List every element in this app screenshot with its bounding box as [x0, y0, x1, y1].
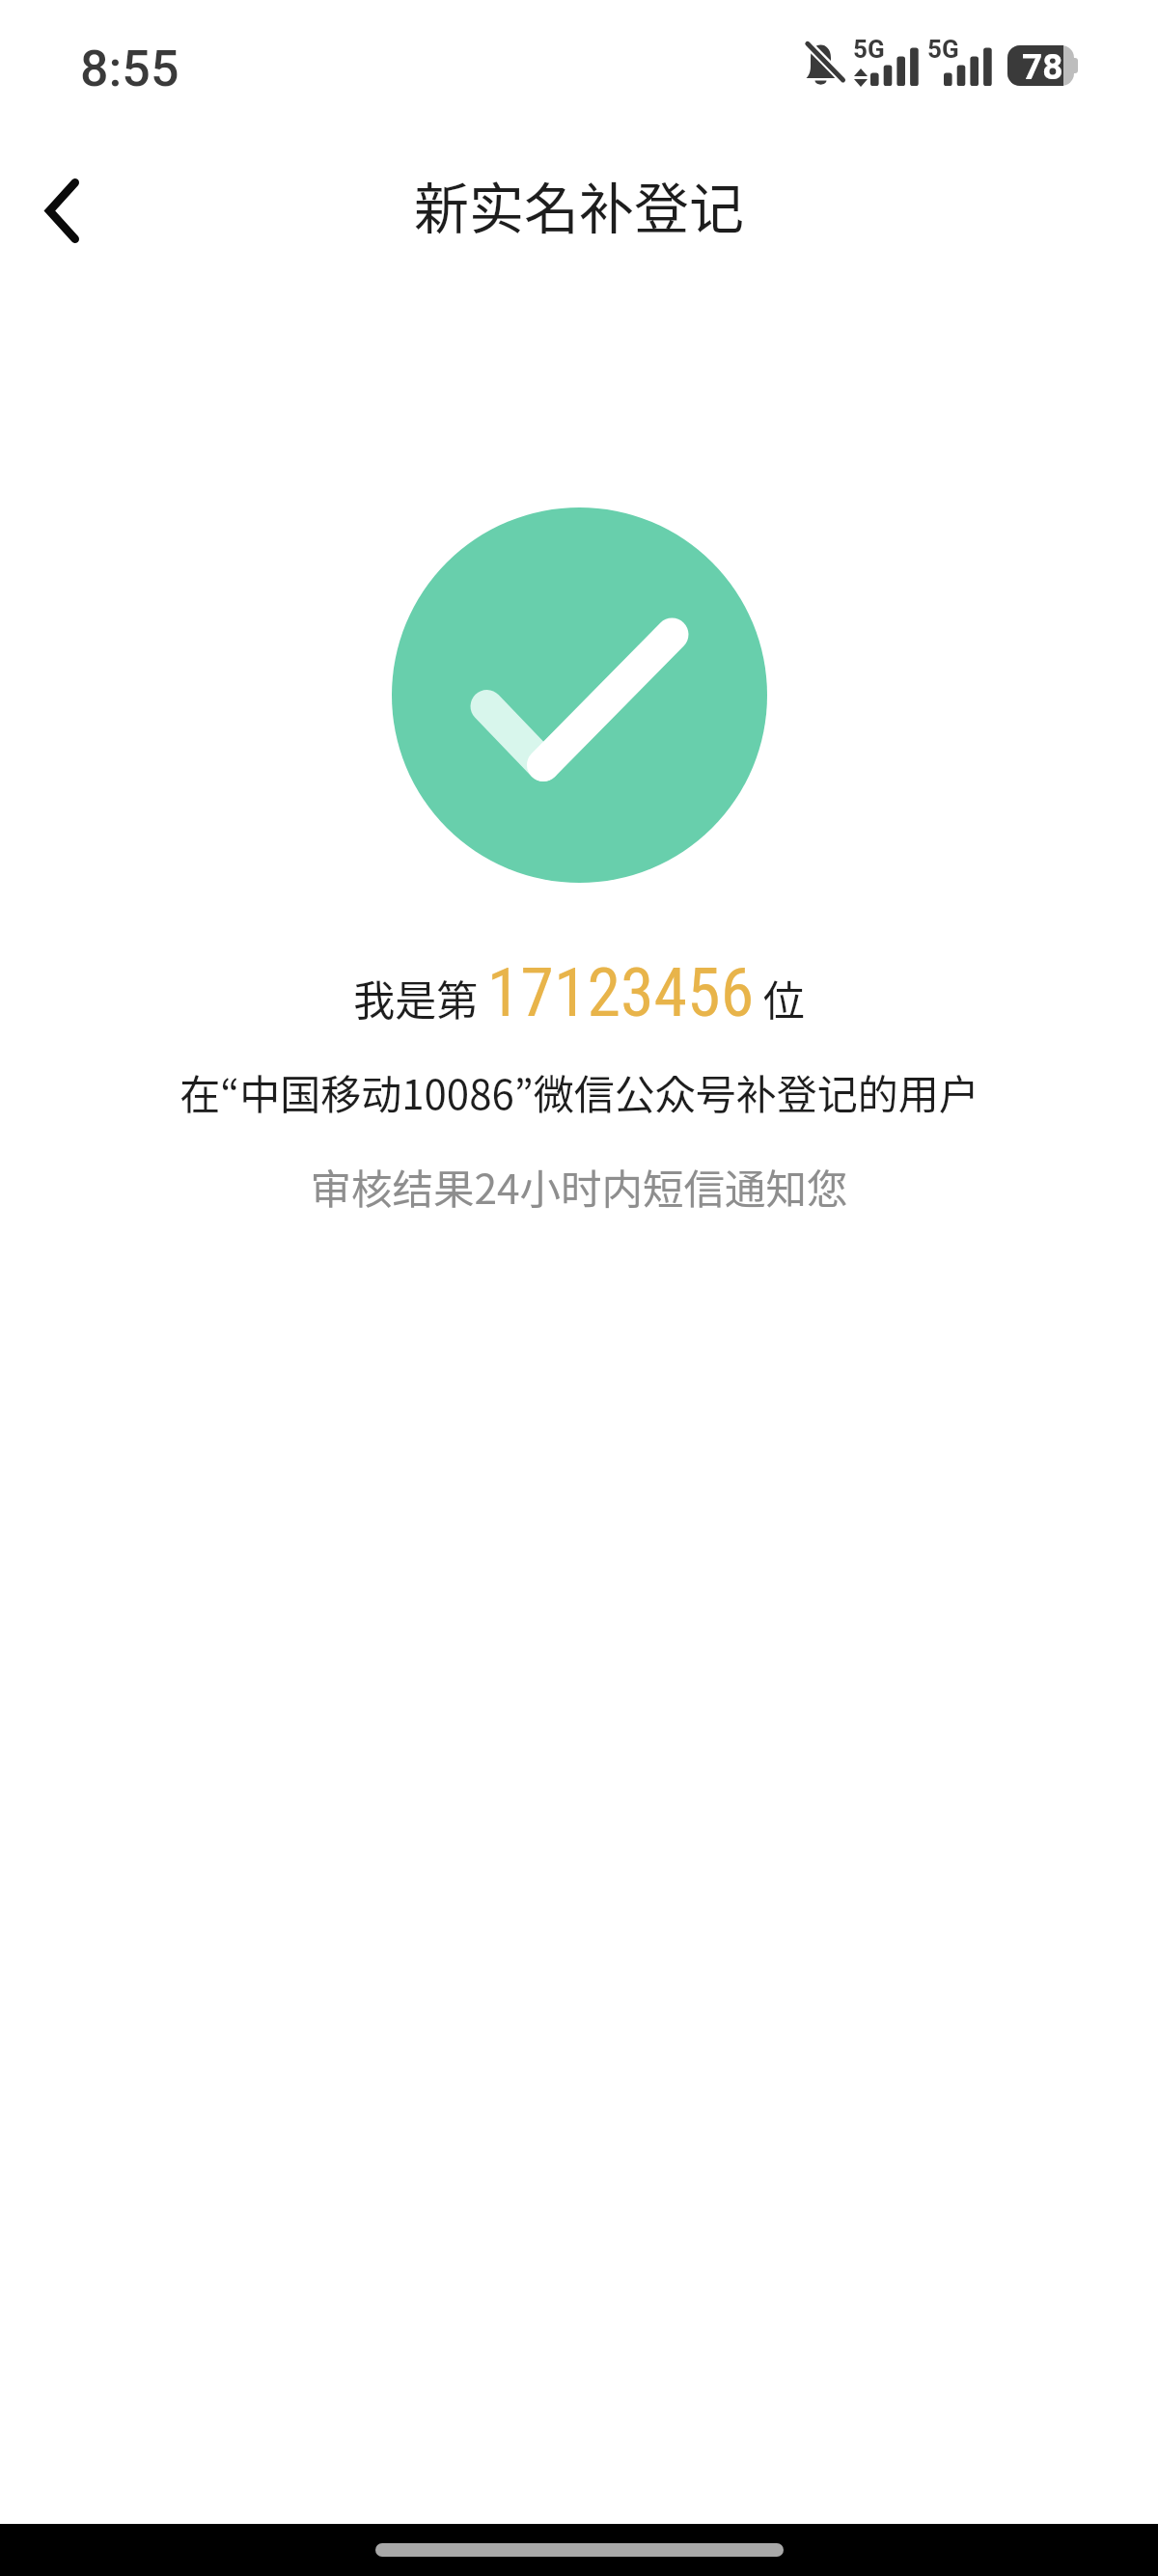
button[interactable]: Back — [9, 157, 115, 263]
staticText: 新实名补登记 — [414, 165, 744, 245]
staticText: 8:55 — [80, 40, 179, 98]
staticText: 5G — [853, 35, 885, 64]
staticText: 在“中国移动10086”微信公众号补登记的用户 — [179, 1062, 979, 1121]
staticText: 78 — [1022, 46, 1063, 87]
staticText: 审核结果24小时内短信通知您 — [310, 1157, 848, 1217]
staticText: 我是第 17123456 位 — [353, 953, 805, 1032]
staticText: 5G — [927, 35, 959, 64]
